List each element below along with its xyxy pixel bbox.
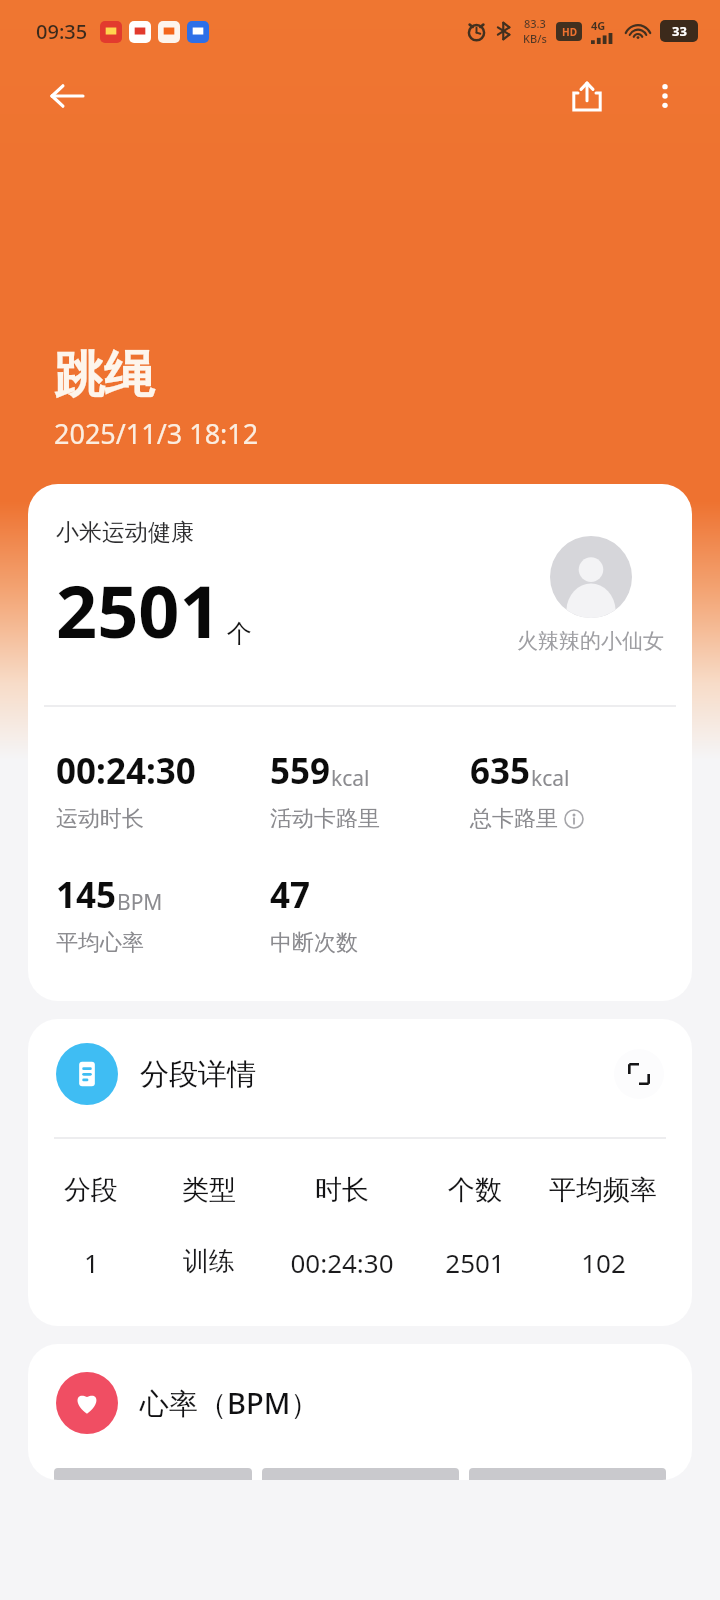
staticText: 心率（BPM） (140, 1383, 320, 1423)
button[interactable]: 分段详情 (28, 1019, 692, 1326)
staticText: 559 (270, 747, 331, 795)
staticText: 活动卡路里 (270, 805, 380, 833)
staticText: kcal (331, 764, 370, 793)
staticText: 1 (84, 1245, 99, 1280)
staticText: 跳绳 (54, 344, 154, 407)
button[interactable]: 小米运动健康 (28, 484, 692, 1001)
staticText: 训练 (183, 1245, 235, 1278)
button[interactable]: Share (560, 69, 614, 123)
staticText: kcal (531, 764, 570, 793)
staticText: 分段 (64, 1173, 118, 1207)
staticText: 火辣辣的小仙女 (517, 628, 664, 654)
staticText: 平均心率 (56, 929, 144, 957)
staticText: 总卡路里 (470, 805, 558, 833)
staticText: 分段详情 (140, 1056, 256, 1093)
staticText: KB/s (523, 31, 547, 46)
staticText: 个数 (448, 1173, 502, 1207)
button[interactable]: More options (638, 69, 692, 123)
staticText: 635 (470, 747, 531, 795)
staticText: 09:35 (36, 18, 88, 45)
staticText: 33 (672, 22, 687, 40)
button[interactable]: 心率（BPM） (28, 1344, 692, 1480)
staticText: 2501 (445, 1245, 505, 1280)
button[interactable]: Expand (614, 1049, 664, 1099)
staticText: 145 (56, 871, 117, 919)
staticText: 平均频率 (549, 1173, 657, 1207)
staticText: 时长 (315, 1173, 369, 1207)
staticText: 83.3 (524, 16, 546, 31)
staticText: HD (562, 25, 577, 39)
button[interactable]: Back (40, 69, 94, 123)
staticText: 类型 (182, 1173, 236, 1207)
staticText: BPM (117, 888, 163, 917)
staticText: 小米运动健康 (56, 518, 194, 547)
staticText: 00:24:30 (290, 1245, 394, 1280)
staticText: 47 (270, 871, 311, 919)
staticText: 2025/11/3 18:12 (54, 415, 259, 452)
staticText: 00:24:30 (56, 747, 196, 795)
staticText: 4G (591, 18, 606, 33)
staticText: 102 (581, 1245, 626, 1280)
staticText: 中断次数 (270, 929, 358, 957)
staticText: 2501 (56, 561, 221, 659)
staticText: 个 (227, 618, 252, 649)
staticText: 运动时长 (56, 805, 144, 833)
